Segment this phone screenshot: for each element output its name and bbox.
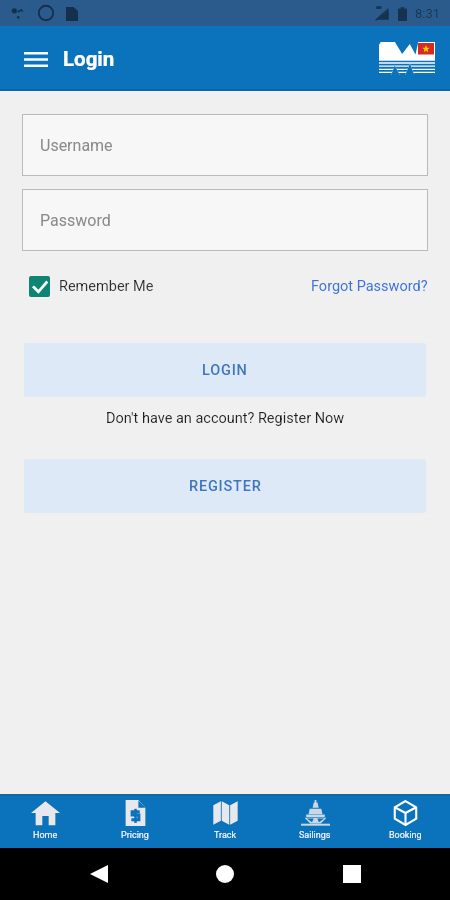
staticText: Track — [214, 830, 237, 841]
button[interactable]: Sailings — [270, 794, 360, 848]
button[interactable]: Pricing — [90, 794, 180, 848]
button[interactable]: Home — [0, 794, 90, 848]
button[interactable]: LOGIN — [24, 343, 426, 397]
button[interactable]: Open navigation menu — [18, 41, 54, 77]
button[interactable]: Forgot Password? — [311, 278, 428, 295]
staticText: Remember Me — [59, 278, 154, 295]
button[interactable]: Home — [211, 860, 239, 888]
staticText: Home — [33, 830, 58, 841]
staticText: Username — [40, 136, 113, 155]
staticText: Sailings — [299, 830, 331, 841]
staticText: Booking — [389, 830, 422, 841]
button[interactable]: Password — [22, 189, 428, 251]
staticText: Login — [63, 47, 115, 71]
button[interactable]: Track — [180, 794, 270, 848]
button[interactable]: Username — [22, 114, 428, 176]
staticText: Pricing — [121, 830, 149, 841]
staticText: Password — [40, 211, 111, 230]
staticText: Don't have an account? Register Now — [106, 410, 345, 427]
staticText: LOGIN — [202, 362, 248, 379]
staticText: REGISTER — [189, 478, 262, 495]
staticText: 8:31 — [415, 6, 441, 21]
button[interactable]: Booking — [360, 794, 450, 848]
button[interactable]: REGISTER — [24, 459, 426, 513]
button[interactable]: Back — [85, 860, 113, 888]
staticText: Forgot Password? — [311, 278, 428, 295]
button[interactable]: Recent apps — [338, 860, 366, 888]
button[interactable]: Remember Me — [29, 276, 154, 297]
